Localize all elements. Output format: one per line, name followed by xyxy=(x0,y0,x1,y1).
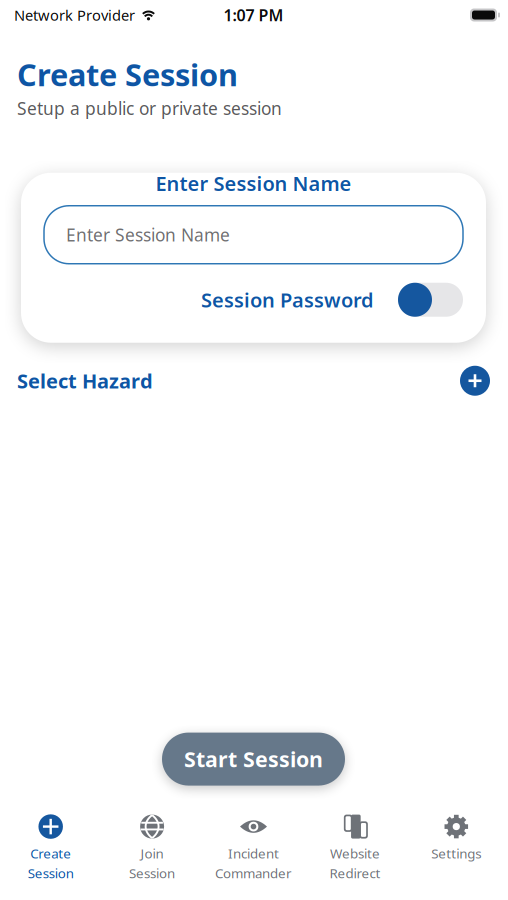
button[interactable]: Settings xyxy=(406,808,507,884)
staticText: Select Hazard xyxy=(17,367,153,394)
button[interactable]: Create xyxy=(0,808,101,884)
staticText: Enter Session Name xyxy=(155,170,351,197)
staticText: Session Password xyxy=(201,286,374,313)
staticText: 1:07 PM xyxy=(223,4,283,26)
staticText: Start Session xyxy=(184,745,323,773)
staticText: Create xyxy=(30,845,71,862)
staticText: Enter Session Name xyxy=(66,223,230,246)
button[interactable]: Start Session xyxy=(162,733,345,786)
staticText: Create Session xyxy=(17,54,238,95)
staticText: Network Provider xyxy=(14,5,135,25)
staticText: Redirect xyxy=(329,864,380,882)
staticText: Session xyxy=(129,864,175,882)
button[interactable]: Website xyxy=(304,808,406,884)
button[interactable]: Session Password xyxy=(398,283,463,317)
staticText: Incident xyxy=(228,845,279,862)
staticText: Join xyxy=(141,845,164,862)
button[interactable]: Incident xyxy=(203,808,304,884)
button[interactable]: Add hazard xyxy=(460,366,490,396)
button[interactable]: Join xyxy=(101,808,203,884)
staticText: Session xyxy=(28,864,74,882)
staticText: Website xyxy=(330,845,380,862)
staticText: Commander xyxy=(215,864,292,882)
staticText: Setup a public or private session xyxy=(17,97,282,120)
staticText: Settings xyxy=(431,845,481,862)
